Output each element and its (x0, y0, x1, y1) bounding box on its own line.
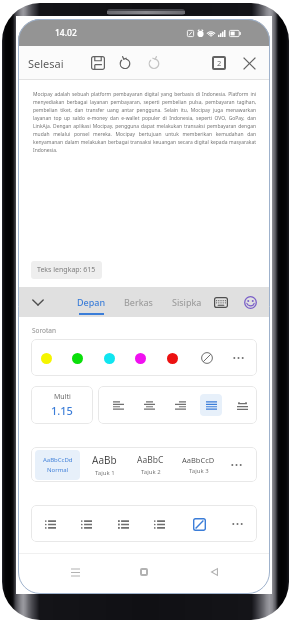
button[interactable]: Berkas (119, 287, 157, 317)
button[interactable]: AaBbCcDd (35, 450, 80, 480)
button[interactable]: AaBbCcD (175, 450, 221, 480)
staticText: Tajuk 2 (141, 468, 161, 476)
button[interactable]: No highlight (196, 347, 218, 369)
button[interactable]: Alignment option (138, 394, 160, 416)
button[interactable]: Highlight colour (66, 347, 88, 369)
button[interactable]: Highlight colour (35, 347, 57, 369)
staticText: AaBbCcD (182, 455, 215, 465)
button[interactable]: Close (238, 52, 261, 75)
button[interactable]: Teks lengkap: 615 (31, 261, 102, 279)
button[interactable]: Highlight colour (129, 347, 151, 369)
button[interactable]: AaBbC (127, 450, 174, 480)
staticText: Sorotan (32, 326, 56, 335)
button[interactable]: AaBb (82, 450, 127, 480)
staticText: Teks lengkap: 615 (37, 265, 96, 275)
button[interactable]: Emoji (238, 290, 262, 314)
button[interactable]: Multi (31, 386, 93, 424)
button[interactable]: Insert shape (188, 513, 210, 535)
button[interactable]: List style (75, 513, 97, 535)
staticText: Selesai (28, 56, 64, 71)
button[interactable]: Redo (143, 52, 165, 74)
button[interactable]: List style (39, 513, 61, 535)
staticText: Depan (77, 296, 106, 308)
button[interactable]: Open tabs (208, 52, 230, 74)
staticText: AaBbC (137, 454, 164, 466)
button[interactable]: More styles (225, 454, 247, 476)
button[interactable]: Highlight colour (98, 347, 120, 369)
staticText: Tajuk 3 (189, 467, 209, 475)
button[interactable]: List style (112, 513, 134, 535)
button[interactable]: Save (87, 52, 109, 74)
staticText: AaBbCcDd (43, 456, 73, 464)
staticText: 1.15 (51, 403, 73, 418)
button[interactable]: Home (131, 559, 157, 585)
staticText: Sisipkan (172, 296, 202, 308)
button[interactable]: Highlight colour (161, 347, 183, 369)
button[interactable]: More colours (227, 347, 249, 369)
button[interactable]: Alignment option (169, 394, 191, 416)
button[interactable]: List style (148, 513, 170, 535)
staticText: Mocipay adalah sebuah platform pembayara… (33, 91, 256, 153)
staticText: Normal (47, 466, 69, 474)
button[interactable]: Undo (114, 52, 136, 74)
button[interactable]: Recents (62, 559, 88, 585)
button[interactable]: Collapse ribbon (25, 290, 50, 315)
button[interactable]: Alignment option (200, 394, 222, 416)
staticText: 14.02 (55, 27, 77, 39)
button[interactable]: Depan (73, 287, 109, 317)
staticText: Tajuk 1 (95, 469, 115, 477)
staticText: Multi (54, 392, 71, 402)
button[interactable]: Selesai (22, 50, 70, 77)
button[interactable]: More list options (226, 513, 248, 535)
button[interactable]: Sisipkan (172, 287, 202, 317)
button[interactable]: Keyboard (209, 290, 233, 314)
button[interactable]: Alignment option (231, 394, 253, 416)
button[interactable]: Back (201, 559, 227, 585)
staticText: Berkas (124, 296, 153, 308)
staticText: AaBb (92, 453, 117, 467)
staticText: 2 (217, 58, 222, 68)
button[interactable]: Alignment option (107, 394, 129, 416)
